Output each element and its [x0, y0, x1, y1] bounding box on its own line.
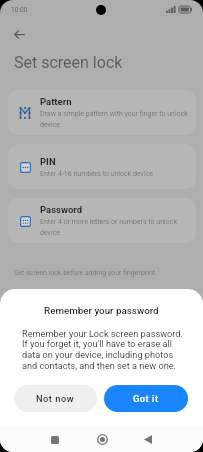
staticText: Enter 4-16 numbers to unlock device: [40, 170, 154, 178]
staticText: Draw a simple pattern with your finger t…: [40, 110, 192, 129]
staticText: Remember your Lock screen password. If y…: [22, 328, 185, 372]
staticText: Set screen lock: [14, 53, 123, 72]
staticText: Not now: [36, 393, 75, 404]
staticText: PIN: [40, 156, 56, 167]
staticText: Remember your password: [44, 305, 159, 316]
button[interactable]: PIN: [8, 144, 196, 189]
button[interactable]: Back: [125, 427, 171, 452]
staticText: Got it: [133, 393, 159, 404]
button[interactable]: Back: [7, 22, 31, 46]
button[interactable]: Got it: [104, 385, 188, 412]
staticText: Enter 4 or more letters or numbers to un…: [40, 218, 192, 237]
button[interactable]: Recents: [32, 427, 78, 452]
button[interactable]: Home: [79, 427, 125, 452]
staticText: 10:00: [11, 6, 28, 14]
staticText: Pattern: [40, 96, 72, 107]
button[interactable]: Pattern: [8, 90, 196, 135]
staticText: Set screen lock before adding your finge…: [14, 269, 157, 277]
button[interactable]: Password: [8, 198, 196, 243]
staticText: Password: [40, 204, 82, 215]
button[interactable]: Not now: [14, 385, 97, 412]
